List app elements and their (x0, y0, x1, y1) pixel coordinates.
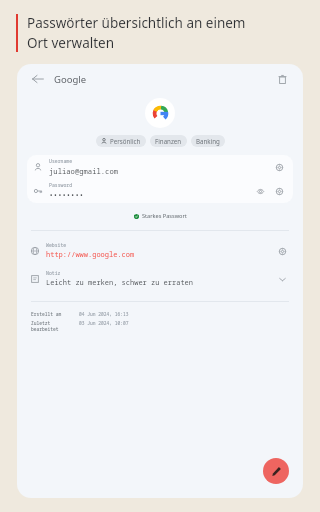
staticText: Persönlich (110, 137, 141, 145)
staticText: Passwörter übersichtlich an einem Ort ve… (27, 14, 246, 52)
staticText: Website (46, 242, 67, 249)
button[interactable]: Copy Password (272, 184, 286, 198)
button[interactable]: Banking (191, 135, 225, 147)
staticText: 04 Jun 2024, 16:13 (79, 311, 129, 317)
staticText: Username (49, 158, 73, 165)
staticText: Notiz (46, 270, 61, 277)
staticText: Zuletzt bearbeitet (31, 320, 79, 332)
staticText: Banking (196, 137, 220, 145)
button[interactable]: Show password (253, 184, 267, 198)
button[interactable]: Expand note (275, 272, 289, 286)
staticText: Finanzen (155, 137, 182, 145)
staticText: Google (54, 73, 87, 86)
staticText: Starkes Passwort (142, 212, 187, 220)
button[interactable]: Website (17, 240, 303, 262)
staticText: http://www.google.com (46, 250, 135, 260)
button[interactable]: Edit (263, 458, 289, 484)
staticText: 03 Jun 2024, 10:07 (79, 320, 129, 326)
button[interactable]: Back (28, 69, 48, 89)
button[interactable]: Delete (272, 69, 292, 89)
button[interactable]: Copy Username (272, 160, 286, 174)
staticText: Erstellt am (31, 311, 62, 317)
button[interactable]: Open website (275, 244, 289, 258)
staticText: Leicht zu merken, schwer zu erraten (46, 278, 193, 288)
staticText: juliao@gmail.com (49, 166, 119, 176)
staticText: •••••••• (49, 190, 84, 200)
staticText: Password (49, 182, 73, 189)
button[interactable]: Password (27, 179, 293, 203)
button[interactable]: Username (27, 155, 293, 179)
button[interactable]: Notiz (17, 268, 303, 290)
button[interactable]: Finanzen (150, 135, 187, 147)
button[interactable]: Persönlich (96, 135, 146, 147)
